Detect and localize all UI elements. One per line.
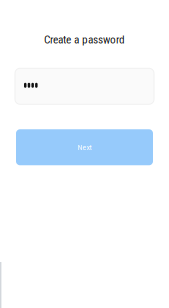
button[interactable]: Password bbox=[15, 68, 154, 104]
button[interactable]: Next bbox=[16, 129, 153, 165]
staticText: Next bbox=[77, 143, 91, 152]
staticText: Create a password bbox=[44, 33, 125, 46]
